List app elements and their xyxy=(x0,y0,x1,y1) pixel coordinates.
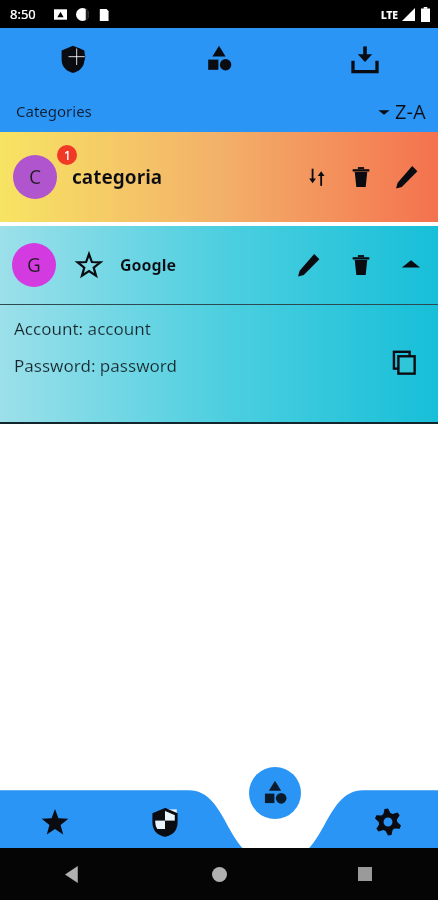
button[interactable]: Import xyxy=(292,28,438,90)
staticText: Account: account xyxy=(14,317,151,340)
staticText: Google xyxy=(120,254,177,276)
staticText: C xyxy=(29,164,42,190)
button[interactable]: Edit xyxy=(296,252,322,278)
button[interactable]: Categories xyxy=(146,28,292,90)
button[interactable]: Edit xyxy=(394,164,420,190)
staticText: 1 xyxy=(64,147,71,163)
button[interactable]: G xyxy=(0,226,438,304)
staticText: Z-A xyxy=(395,98,426,125)
staticText: categoria xyxy=(72,164,163,190)
button[interactable]: Delete xyxy=(348,252,374,278)
staticText: LTE xyxy=(381,8,398,22)
staticText: Categories xyxy=(16,101,92,121)
button[interactable]: Delete xyxy=(348,164,374,190)
button[interactable]: Sort xyxy=(304,164,330,190)
button[interactable]: Categories xyxy=(0,90,438,132)
button[interactable]: Settings xyxy=(338,797,438,847)
button[interactable]: Add xyxy=(249,767,301,819)
staticText: Password: password xyxy=(14,354,177,377)
button[interactable]: Collapse xyxy=(398,252,424,278)
staticText: G xyxy=(27,252,41,278)
button[interactable]: Favorites xyxy=(0,797,110,847)
button[interactable]: Passwords xyxy=(110,797,220,847)
button[interactable]: C xyxy=(0,132,438,222)
button[interactable]: Favorite xyxy=(76,252,102,278)
button[interactable]: Secure browser xyxy=(0,28,146,90)
staticText: 8:50 xyxy=(10,5,36,23)
button[interactable]: Copy password xyxy=(390,349,418,377)
